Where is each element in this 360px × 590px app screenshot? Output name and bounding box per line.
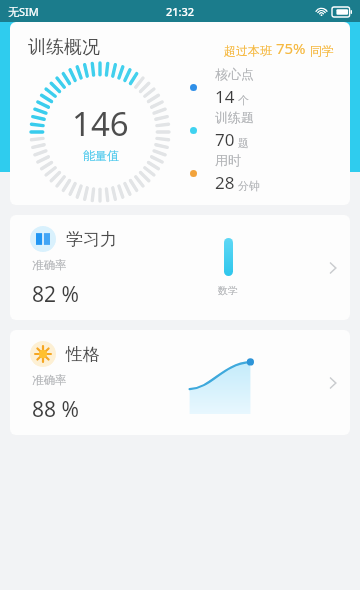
staticText: 146 (72, 101, 129, 146)
button[interactable]: 头像 (14, 88, 86, 160)
staticText: 性格 (66, 344, 100, 365)
staticText: 准确率 (32, 258, 67, 272)
staticText: 同学 (310, 43, 334, 58)
staticText: 28 (215, 171, 235, 194)
staticText: 周报 (36, 33, 74, 57)
staticText: 训练概况 (28, 36, 100, 59)
button[interactable]: 返回 (0, 33, 82, 57)
staticText: 准确率 (32, 373, 67, 387)
button[interactable]: 学习力 (10, 215, 350, 320)
staticText: 深夜港湾 (97, 104, 161, 124)
staticText: 88 % (32, 395, 79, 424)
staticText: 分钟 (238, 179, 260, 193)
staticText: 82 % (32, 280, 79, 309)
staticText: 超过本班 (224, 43, 272, 58)
staticText: 题 (238, 136, 249, 150)
staticText: 无SIM (8, 4, 39, 19)
button[interactable]: 性格 (10, 330, 350, 435)
staticText: 荣获“博学宝宝”称号 (97, 128, 206, 145)
staticText: 数学 (218, 284, 238, 297)
staticText: 用时 (215, 152, 241, 168)
button[interactable]: 深夜港湾 (75, 95, 340, 154)
staticText: 75% (272, 38, 310, 58)
staticText: 能量值 (83, 148, 119, 163)
staticText: 个 (238, 93, 249, 107)
staticText: 70 (215, 128, 235, 151)
staticText: 21:32 (166, 4, 195, 19)
staticText: 14 (215, 85, 235, 108)
staticText: 训练题 (215, 109, 254, 125)
staticText: 学习力 (66, 229, 117, 250)
button[interactable]: 历史记录 (315, 22, 360, 67)
staticText: 核心点 (215, 66, 254, 82)
